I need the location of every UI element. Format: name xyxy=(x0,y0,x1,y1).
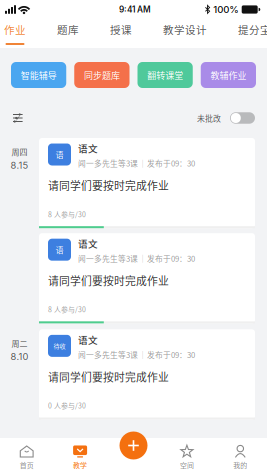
staticText: 请同学们要按时完成作业 xyxy=(48,369,169,384)
button[interactable]: 教辅作业 xyxy=(201,62,256,88)
staticText: 语文 xyxy=(78,333,98,346)
staticText: 100% xyxy=(213,4,239,15)
staticText: 请同学们要按时完成作业 xyxy=(48,177,169,193)
staticText: 翻转课堂 xyxy=(147,68,183,81)
button[interactable]: 提分宝 xyxy=(235,19,267,48)
button[interactable]: 待收 xyxy=(39,329,255,420)
button[interactable]: 同步题库 xyxy=(74,62,129,88)
staticText: 未批改 xyxy=(197,112,221,124)
button[interactable]: 智能辅导 xyxy=(11,62,66,88)
staticText: 教学设计 xyxy=(163,22,207,37)
button[interactable]: 首页 xyxy=(0,438,53,474)
staticText: 8.10 xyxy=(10,351,28,362)
staticText: 语文 xyxy=(78,236,98,250)
staticText: 语 xyxy=(55,149,63,160)
staticText: 题库 xyxy=(57,22,79,37)
staticText: 语 xyxy=(55,244,63,255)
staticText: 同步题库 xyxy=(84,68,120,81)
button[interactable]: 新建 xyxy=(119,431,147,459)
staticText: 周二 xyxy=(11,337,27,349)
button[interactable]: 题库 xyxy=(54,19,81,48)
staticText: 授课 xyxy=(110,22,132,37)
staticText: 闻一多先生等3课 xyxy=(78,349,138,360)
staticText: 首页 xyxy=(20,460,34,470)
staticText: 周四 xyxy=(11,146,27,158)
button[interactable]: 翻转课堂 xyxy=(137,62,193,88)
button[interactable]: 教学 xyxy=(53,438,107,474)
staticText: 发布于09：30 xyxy=(147,158,195,169)
staticText: 9:41 AM xyxy=(119,4,151,14)
button[interactable]: 语 xyxy=(39,233,255,323)
staticText: | xyxy=(141,350,143,359)
staticText: 教学 xyxy=(73,460,87,470)
staticText: 我的 xyxy=(233,460,247,470)
staticText: 智能辅导 xyxy=(21,68,57,81)
staticText: 0 人参与/30 xyxy=(48,400,86,410)
staticText: 发布于09：30 xyxy=(147,253,195,264)
staticText: 作业 xyxy=(4,22,26,37)
staticText: | xyxy=(141,254,143,262)
staticText: 8 人参与/30 xyxy=(48,304,86,314)
button[interactable]: 作业 xyxy=(1,19,28,48)
button[interactable]: 教学设计 xyxy=(160,19,209,48)
button[interactable]: 未批改 xyxy=(230,112,255,124)
button[interactable]: 空间 xyxy=(160,438,214,474)
staticText: 提分宝 xyxy=(238,22,267,37)
staticText: 请同学们要按时完成作业 xyxy=(48,273,169,288)
button[interactable]: 语 xyxy=(39,138,255,228)
staticText: | xyxy=(141,159,143,167)
staticText: 8 人参与/30 xyxy=(48,209,86,219)
button[interactable]: 授课 xyxy=(107,19,134,48)
button[interactable]: 我的 xyxy=(214,438,267,474)
staticText: 闻一多先生等3课 xyxy=(78,253,138,264)
staticText: 待收 xyxy=(53,341,65,350)
staticText: 发布于09：30 xyxy=(147,349,195,360)
staticText: 8.15 xyxy=(10,160,28,171)
staticText: 空间 xyxy=(180,460,194,470)
staticText: 语文 xyxy=(78,141,98,155)
button[interactable]: 筛选 xyxy=(13,110,35,126)
staticText: 闻一多先生等3课 xyxy=(78,158,138,169)
staticText: 教辅作业 xyxy=(210,68,246,81)
